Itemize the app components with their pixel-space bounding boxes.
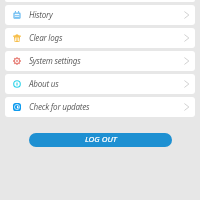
- button[interactable]: Clear logs: [5, 28, 195, 48]
- staticText: About us: [29, 78, 59, 89]
- staticText: Clear logs: [29, 32, 63, 43]
- button[interactable]: History: [5, 5, 195, 25]
- button[interactable]: LOG OUT: [29, 133, 172, 147]
- button[interactable]: System settings: [5, 51, 195, 71]
- button[interactable]: Check for updates: [5, 97, 195, 117]
- staticText: System settings: [29, 55, 81, 66]
- staticText: LOG OUT: [85, 134, 117, 145]
- staticText: Check for updates: [29, 101, 90, 112]
- button[interactable]: About us: [5, 74, 195, 94]
- staticText: History: [29, 9, 53, 20]
